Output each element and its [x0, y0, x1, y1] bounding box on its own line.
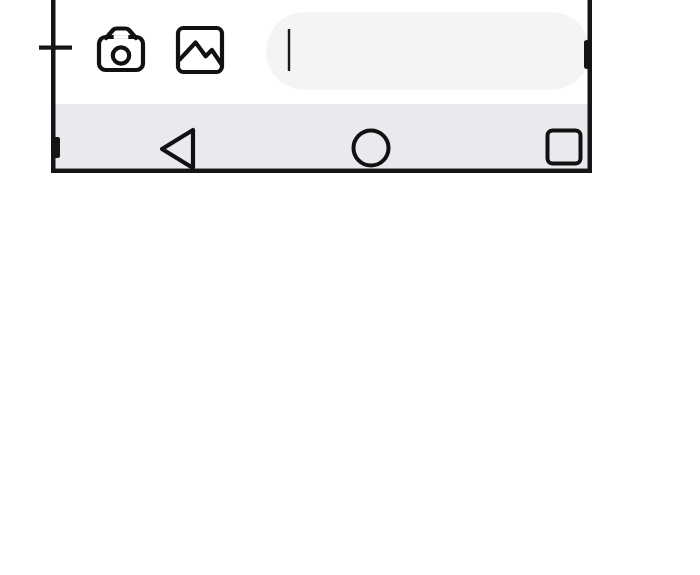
button[interactable]: Message input [266, 12, 592, 90]
button[interactable]: Back [148, 116, 208, 168]
button[interactable]: Home [343, 116, 401, 168]
button[interactable]: Gallery [171, 21, 229, 79]
button[interactable]: Recent apps [536, 116, 592, 168]
button[interactable]: Camera [92, 25, 150, 75]
